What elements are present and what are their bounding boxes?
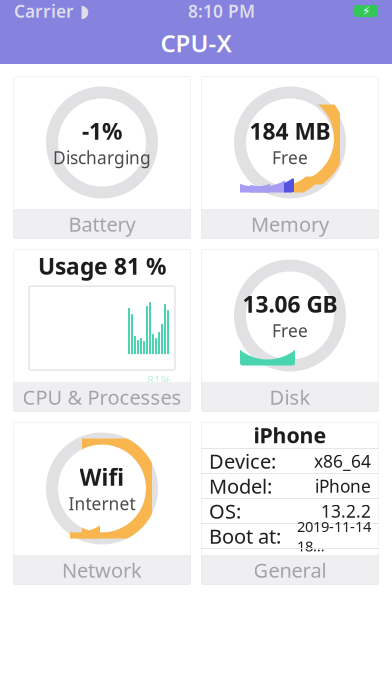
button[interactable]: -1% xyxy=(13,76,191,239)
staticText: 8:10 PM xyxy=(188,0,255,22)
button[interactable]: 184 MB xyxy=(201,76,379,239)
staticText: Network xyxy=(62,557,142,583)
staticText: Discharging xyxy=(53,146,151,169)
staticText: Memory xyxy=(251,211,329,237)
staticText: Battery xyxy=(68,211,135,237)
button[interactable]: iPhone xyxy=(201,422,379,585)
staticText: Disk xyxy=(269,384,310,410)
staticText: 81% xyxy=(147,372,171,388)
staticText: iPhone xyxy=(253,421,326,449)
staticText: ⚡︎ xyxy=(362,4,370,18)
button[interactable]: 13.06 GB xyxy=(201,249,379,412)
staticText: Wifi xyxy=(79,462,124,492)
staticText: iPhone xyxy=(315,474,371,497)
staticText: General xyxy=(253,557,326,583)
staticText: Boot at: xyxy=(209,523,281,549)
staticText: Carrier xyxy=(14,0,74,22)
staticText: CPU & Processes xyxy=(22,384,181,410)
staticText: Free xyxy=(272,146,308,169)
staticText: 2019-11-14 18… xyxy=(297,516,371,555)
staticText: Internet xyxy=(68,492,135,515)
staticText: Device: xyxy=(209,448,276,474)
staticText: ◗ xyxy=(74,1,89,21)
staticText: Usage 81 % xyxy=(38,251,166,281)
staticText: -1% xyxy=(82,116,122,146)
staticText: CPU-X xyxy=(160,27,231,59)
button[interactable]: Wifi xyxy=(13,422,191,585)
staticText: 13.06 GB xyxy=(242,289,337,319)
button[interactable]: Usage 81 % xyxy=(13,249,191,412)
staticText: x86_64 xyxy=(314,449,371,472)
staticText: 13.2.2 xyxy=(321,499,371,522)
staticText: Free xyxy=(272,319,308,342)
staticText: 184 MB xyxy=(249,116,330,146)
staticText: Model: xyxy=(209,473,272,499)
staticText: OS: xyxy=(209,498,241,524)
